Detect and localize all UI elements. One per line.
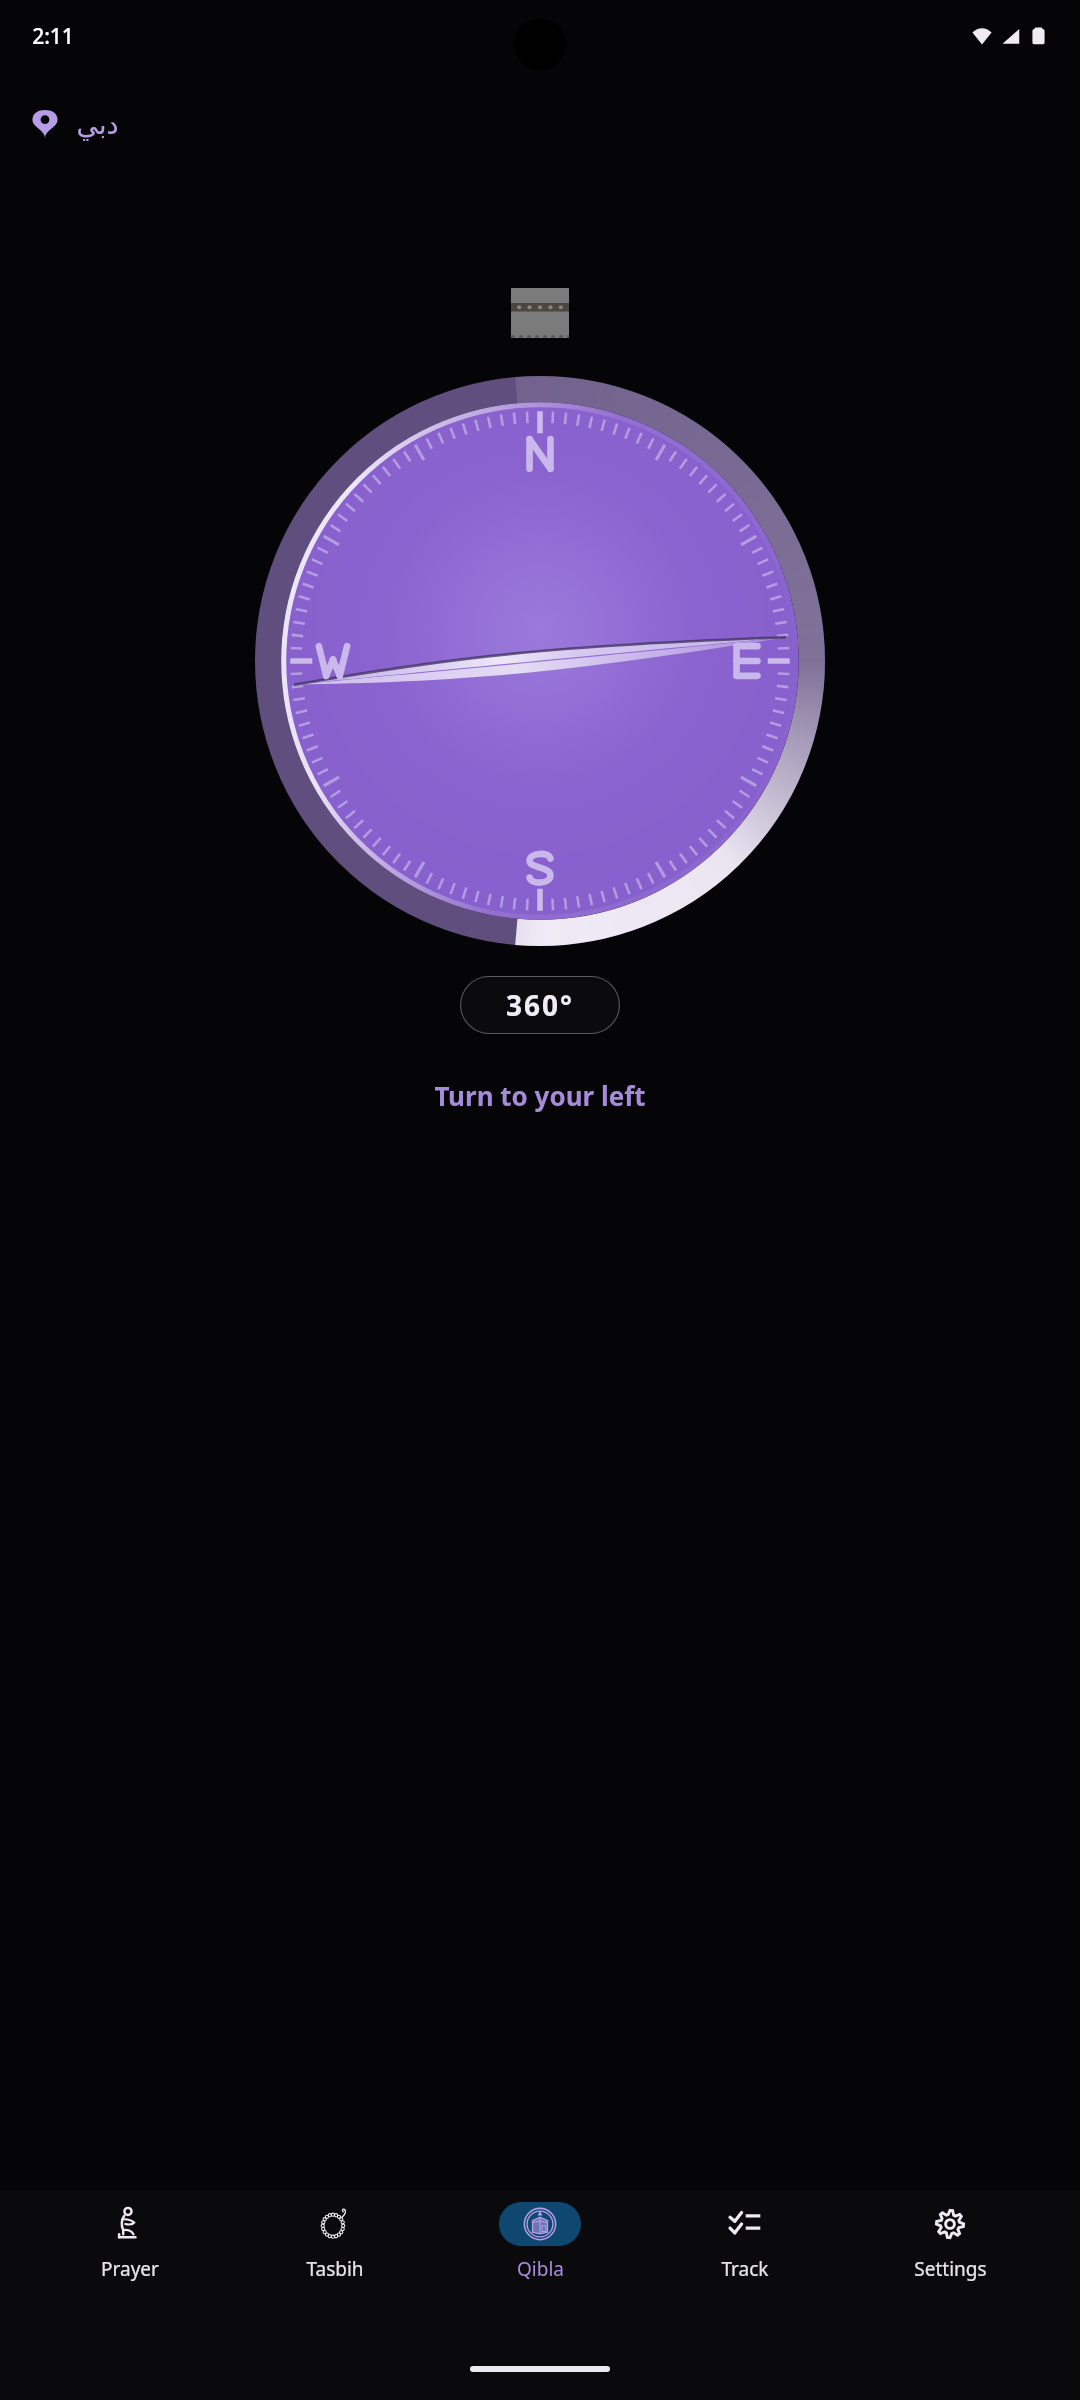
button[interactable]: Qibla [465,2202,615,2282]
staticText: Qibla [517,2256,564,2282]
other: Location [30,109,60,139]
button[interactable]: Settings [875,2202,1025,2282]
staticText: Prayer [101,2256,159,2282]
staticText: Tasbih [306,2256,364,2282]
staticText: 2:11 [32,22,74,51]
staticText: 360° [506,986,574,1024]
button[interactable]: 360° [460,976,620,1034]
staticText: Turn to your left [434,1078,646,1113]
staticText: دبي [76,109,119,140]
button[interactable]: Location [0,72,1080,176]
button[interactable]: Prayer [55,2202,205,2282]
button[interactable]: Track [670,2202,820,2282]
button[interactable]: Tasbih [260,2202,410,2282]
staticText: Track [721,2256,769,2282]
staticText: Settings [914,2256,987,2282]
